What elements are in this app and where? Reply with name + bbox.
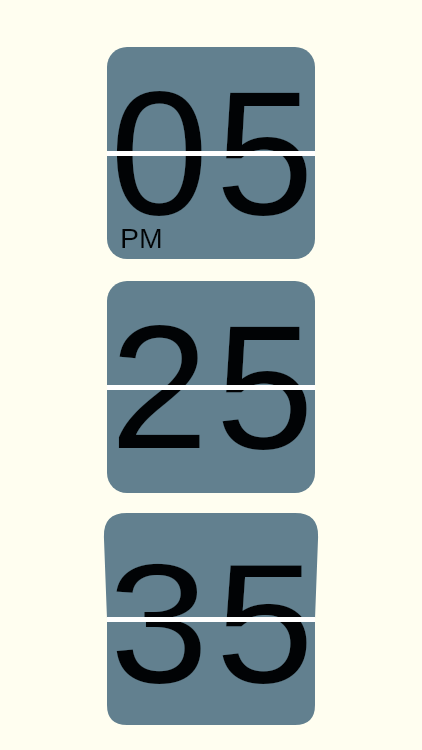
staticText: 25: [110, 288, 315, 486]
staticText: 35: [110, 522, 315, 720]
button[interactable]: 35: [103, 513, 319, 725]
staticText: PM: [120, 222, 163, 254]
button[interactable]: 25: [107, 281, 315, 493]
staticText: 05: [110, 54, 315, 252]
staticText: 35: [107, 532, 319, 706]
button[interactable]: 05: [107, 47, 315, 259]
